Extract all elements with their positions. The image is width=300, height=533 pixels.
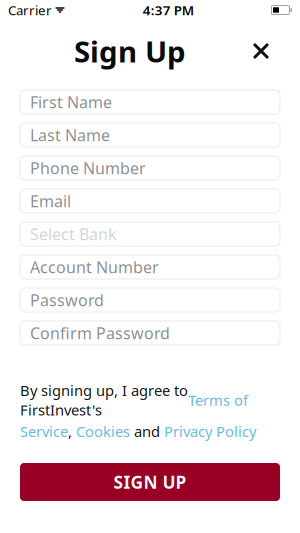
staticText: Cookies [76,421,130,441]
button[interactable]: Terms of [188,390,248,410]
button[interactable]: Cookies [76,421,130,441]
staticText: Confirm Password [30,322,170,344]
staticText: , [68,421,76,441]
button[interactable]: Close [242,32,280,70]
staticText: Sign Up [74,31,186,70]
button[interactable]: Phone Number [20,156,280,180]
staticText: Account Number [30,256,159,278]
staticText: Select Bank [30,223,117,245]
staticText: Last Name [30,124,110,146]
staticText: Carrier [8,1,52,19]
button[interactable]: Account Number [20,255,280,279]
button[interactable]: SIGN UP [20,463,280,501]
staticText: and [130,421,164,441]
staticText: Phone Number [30,157,146,179]
staticText: First Name [30,91,112,113]
button[interactable]: First Name [20,90,280,114]
staticText: By signing up, I agree to FirstInvest's [20,381,188,420]
button[interactable]: Last Name [20,123,280,147]
staticText: 4:37 PM [143,1,194,19]
button[interactable]: Privacy Policy [164,421,256,441]
staticText: Privacy Policy [164,421,256,441]
staticText: Terms of [188,390,248,410]
button[interactable]: Email [20,189,280,213]
staticText: SIGN UP [113,470,186,493]
staticText: Email [30,190,71,212]
button[interactable]: Confirm Password [20,321,280,345]
button[interactable]: Service [20,421,68,441]
button[interactable]: Select Bank [20,222,280,246]
button[interactable]: Password [20,288,280,312]
staticText: Password [30,289,104,311]
staticText: Service [20,421,68,441]
